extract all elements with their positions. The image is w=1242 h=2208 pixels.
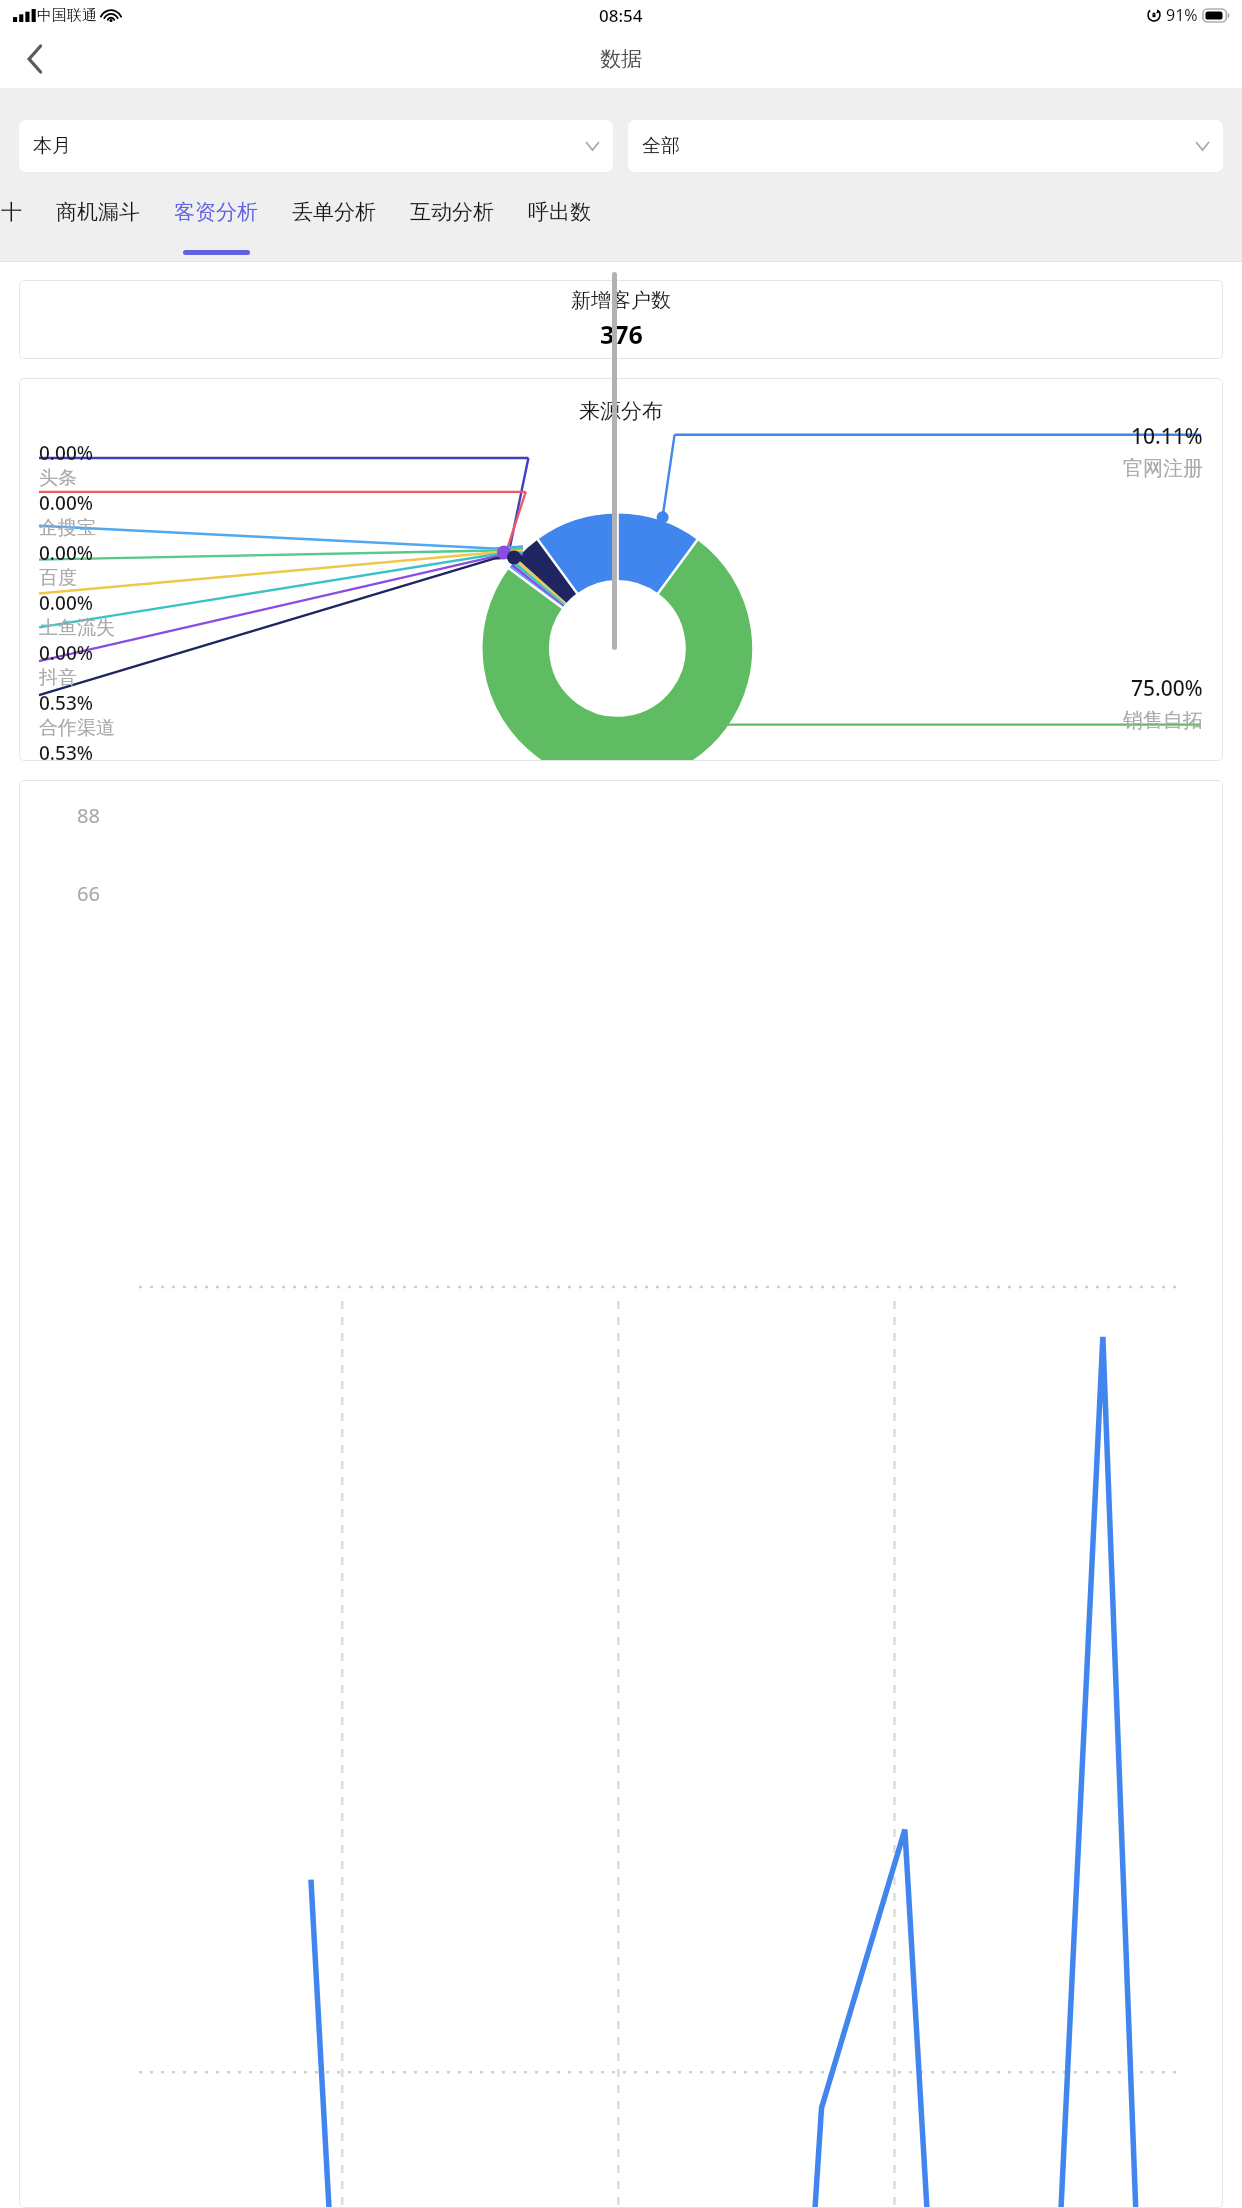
staticText: 08:54: [599, 4, 643, 27]
button[interactable]: 十: [0, 186, 39, 261]
staticText: 企搜宝: [39, 516, 96, 540]
staticText: 66: [77, 880, 100, 907]
staticText: 10.11%: [1131, 422, 1203, 451]
staticText: 0.00%: [39, 640, 93, 666]
staticText: 88: [77, 802, 100, 829]
button[interactable]: 商机漏斗: [39, 186, 157, 261]
button[interactable]: 呼出数: [511, 186, 608, 261]
button[interactable]: 本月: [19, 120, 613, 172]
staticText: 75.00%: [1131, 674, 1203, 703]
button[interactable]: 客资分析: [157, 186, 275, 261]
staticText: 0.00%: [39, 440, 93, 466]
staticText: 丢单分析: [292, 199, 376, 225]
staticText: 土鱼流失: [39, 616, 115, 640]
staticText: 客资分析: [174, 199, 258, 225]
staticText: 新增客户数: [571, 288, 671, 313]
staticText: 商机漏斗: [56, 199, 140, 225]
staticText: 百度: [39, 566, 77, 590]
button[interactable]: 新增客户数: [19, 280, 1223, 359]
staticText: 销售自拓: [1123, 708, 1203, 733]
staticText: 十: [1, 199, 22, 225]
staticText: 0.00%: [39, 490, 93, 516]
staticText: 互动分析: [410, 199, 494, 225]
staticText: 来源分布: [579, 398, 663, 424]
staticText: 合作渠道: [39, 716, 115, 740]
staticText: 呼出数: [528, 199, 591, 225]
staticText: 中国联通: [37, 6, 97, 25]
staticText: 官网注册: [1123, 456, 1203, 481]
staticText: 本月: [33, 134, 71, 158]
button[interactable]: Back: [8, 32, 62, 86]
staticText: 0.00%: [39, 590, 93, 616]
button[interactable]: 丢单分析: [275, 186, 393, 261]
staticText: 91%: [1166, 4, 1198, 26]
staticText: 全部: [642, 134, 680, 158]
staticText: 数据: [600, 46, 642, 72]
staticText: 376: [600, 317, 643, 351]
staticText: 0.00%: [39, 540, 93, 566]
button[interactable]: 88: [19, 780, 1223, 2208]
button[interactable]: 全部: [628, 120, 1223, 172]
button[interactable]: 来源分布: [19, 378, 1223, 761]
button[interactable]: 互动分析: [393, 186, 511, 261]
staticText: 0.53%: [39, 690, 93, 716]
staticText: 0.53%: [39, 740, 93, 761]
staticText: 抖音: [39, 666, 77, 690]
staticText: 头条: [39, 466, 77, 490]
